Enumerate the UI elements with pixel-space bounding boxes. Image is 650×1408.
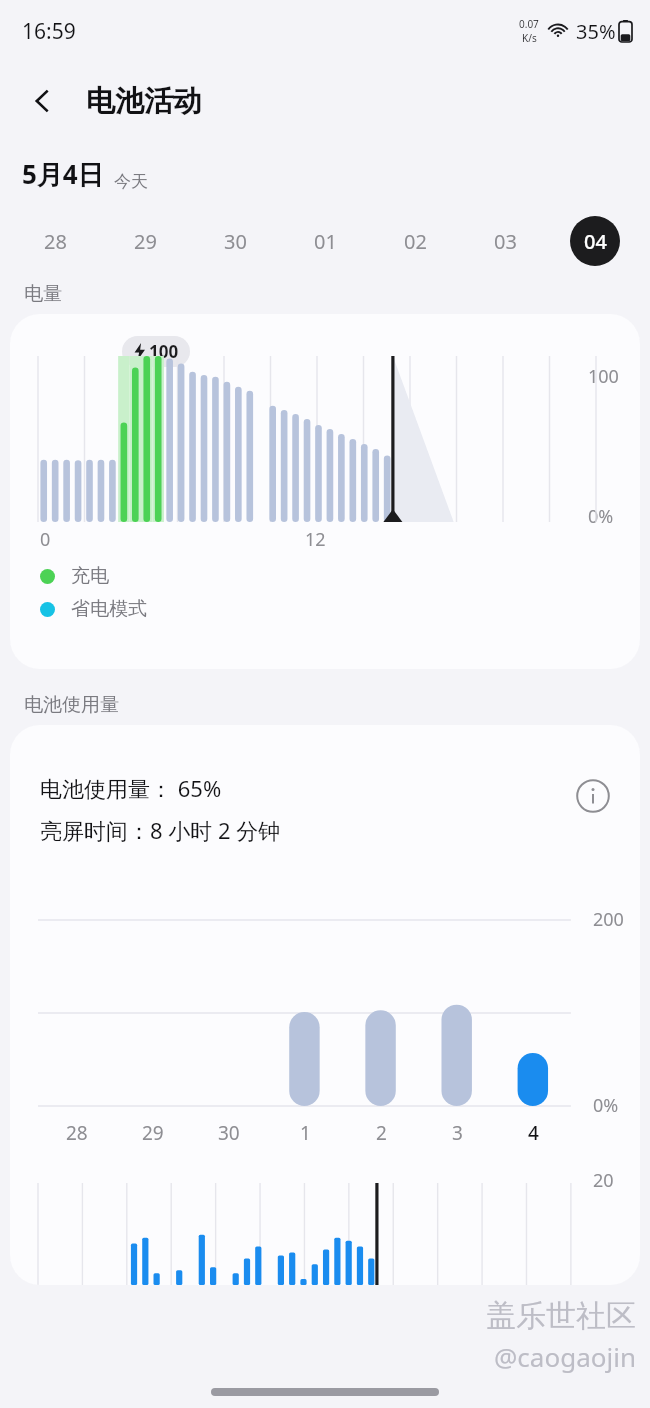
- button[interactable]: 29: [100, 214, 190, 268]
- staticText: 30: [224, 228, 247, 255]
- staticText: 30: [218, 1120, 240, 1146]
- staticText: 电池使用量： 65%: [40, 773, 222, 803]
- staticText: 亮屏时间：8 小时 2 分钟: [40, 815, 281, 845]
- staticText: 28: [44, 228, 67, 255]
- button[interactable]: Info: [570, 773, 616, 819]
- button[interactable]: 28: [10, 214, 100, 268]
- staticText: 3: [452, 1120, 463, 1146]
- staticText: K/s: [522, 31, 537, 45]
- staticText: 4: [528, 1120, 539, 1146]
- button[interactable]: 01: [280, 214, 370, 268]
- staticText: 100: [588, 364, 619, 389]
- staticText: 电池活动: [86, 83, 202, 120]
- staticText: 盖乐世社区: [486, 1297, 636, 1335]
- staticText: 04: [584, 228, 607, 255]
- staticText: 01: [314, 228, 337, 255]
- staticText: 充电: [71, 564, 109, 588]
- staticText: 今天: [114, 171, 148, 192]
- button[interactable]: Back: [14, 72, 72, 130]
- staticText: 29: [142, 1120, 164, 1146]
- staticText: 20: [593, 1168, 614, 1193]
- staticText: 12: [305, 527, 326, 552]
- staticText: 0.07: [519, 17, 539, 31]
- staticText: 0: [40, 527, 51, 552]
- staticText: 0%: [588, 504, 614, 529]
- staticText: 电量: [24, 282, 62, 306]
- staticText: 200: [593, 907, 624, 932]
- staticText: 省电模式: [71, 597, 147, 621]
- staticText: 16:59: [22, 17, 76, 46]
- staticText: 28: [66, 1120, 88, 1146]
- button[interactable]: 100: [10, 314, 640, 669]
- staticText: 1: [300, 1120, 311, 1146]
- staticText: 5月4日: [22, 156, 104, 192]
- staticText: 电池使用量: [24, 693, 119, 717]
- button[interactable]: 04: [550, 214, 640, 268]
- staticText: 35%: [576, 18, 616, 45]
- staticText: 0%: [593, 1093, 619, 1118]
- staticText: @caogaojin: [494, 1339, 636, 1374]
- staticText: 100: [149, 340, 179, 363]
- button[interactable]: 30: [190, 214, 280, 268]
- staticText: 02: [404, 228, 427, 255]
- button[interactable]: 电池使用量： 65%: [10, 725, 640, 1285]
- staticText: 2: [376, 1120, 387, 1146]
- staticText: 29: [134, 228, 157, 255]
- staticText: 03: [494, 228, 517, 255]
- button[interactable]: 02: [370, 214, 460, 268]
- button[interactable]: 03: [460, 214, 550, 268]
